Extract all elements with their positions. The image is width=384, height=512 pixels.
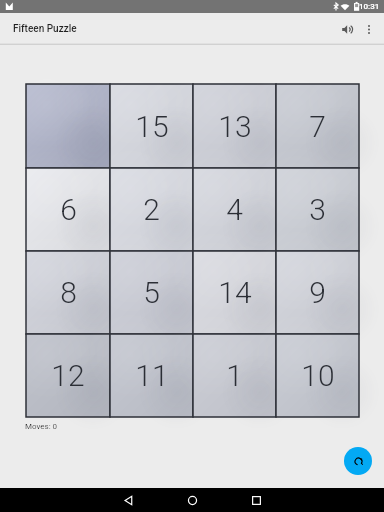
button[interactable]: 10: [276, 334, 359, 417]
button[interactable]: 15: [110, 84, 193, 168]
button[interactable]: Recent apps: [224, 488, 288, 512]
staticText: 12: [51, 358, 85, 393]
button[interactable]: 9: [276, 251, 359, 334]
button[interactable]: 12: [26, 334, 110, 417]
staticText: 15: [135, 109, 169, 144]
button[interactable]: 1: [193, 334, 276, 417]
staticText: 10: [301, 358, 335, 393]
button[interactable]: Home: [160, 488, 224, 512]
button[interactable]: More options: [353, 13, 384, 45]
button[interactable]: 14: [193, 251, 276, 334]
staticText: 6: [60, 192, 77, 227]
staticText: 5: [143, 275, 160, 310]
staticText: 13: [218, 109, 252, 144]
staticText: 9: [309, 275, 326, 310]
staticText: 10:31: [359, 2, 380, 11]
button[interactable]: Toggle sound: [331, 13, 353, 45]
button[interactable]: Restart puzzle: [344, 447, 372, 475]
button[interactable]: 6: [26, 168, 110, 251]
staticText: Moves: 0: [25, 422, 58, 431]
button[interactable]: Back: [96, 488, 160, 512]
button[interactable]: 3: [276, 168, 359, 251]
staticText: 2: [143, 192, 160, 227]
staticText: 1: [226, 358, 243, 393]
staticText: 4: [226, 192, 243, 227]
button[interactable]: 11: [110, 334, 193, 417]
button[interactable]: [26, 84, 110, 168]
staticText: 11: [135, 358, 169, 393]
staticText: Fifteen Puzzle: [13, 23, 77, 35]
staticText: 14: [218, 275, 252, 310]
button[interactable]: 5: [110, 251, 193, 334]
staticText: 7: [309, 109, 326, 144]
button[interactable]: 8: [26, 251, 110, 334]
button[interactable]: 2: [110, 168, 193, 251]
staticText: 3: [309, 192, 326, 227]
staticText: 8: [60, 275, 77, 310]
button[interactable]: 13: [193, 84, 276, 168]
button[interactable]: 4: [193, 168, 276, 251]
button[interactable]: 7: [276, 84, 359, 168]
